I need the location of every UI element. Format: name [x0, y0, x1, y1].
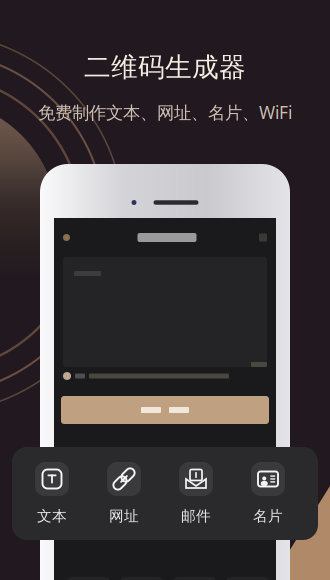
staticText: 免费制作文本、网址、名片、WiFi	[38, 101, 292, 124]
staticText: 文本	[37, 507, 67, 525]
button[interactable]: 名片	[232, 462, 304, 525]
button[interactable]: 邮件	[160, 462, 232, 525]
staticText: 邮件	[181, 507, 211, 525]
button[interactable]: 文本	[16, 462, 88, 525]
staticText: 网址	[109, 507, 139, 525]
button[interactable]: 网址	[88, 462, 160, 525]
staticText: 二维码生成器	[84, 51, 246, 84]
staticText: 名片	[253, 507, 283, 525]
